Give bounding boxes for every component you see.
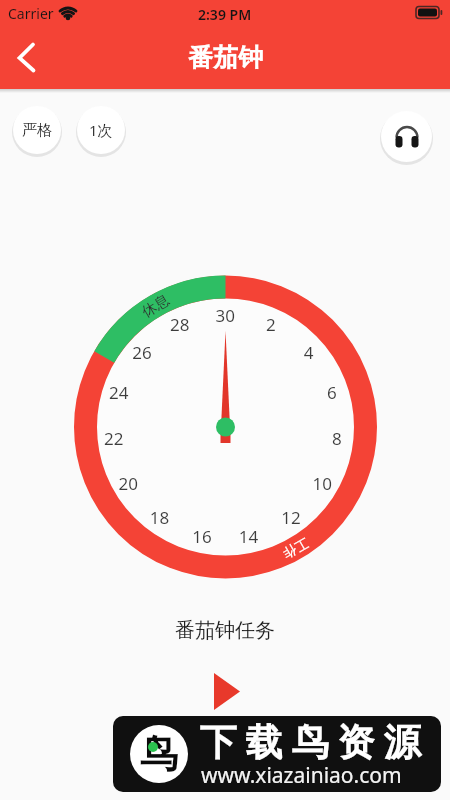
staticText: 番茄钟任务 [175, 618, 275, 642]
staticText: 下载鸟资源 [195, 719, 425, 766]
button[interactable] [381, 111, 432, 162]
staticText: 1次 [89, 120, 113, 140]
button[interactable]: 鸟 [113, 716, 441, 792]
button[interactable] [205, 668, 247, 710]
staticText: 鸟 [140, 730, 178, 778]
button[interactable] [8, 40, 44, 76]
button[interactable]: 严格 [13, 106, 61, 154]
staticText: 番茄钟 [188, 42, 263, 72]
staticText: Carrier [8, 4, 54, 23]
staticText: www.xiazainiao.com [201, 761, 402, 790]
staticText: 2:39 PM [198, 5, 252, 24]
button[interactable]: 1次 [77, 106, 125, 154]
staticText: 严格 [22, 121, 52, 140]
